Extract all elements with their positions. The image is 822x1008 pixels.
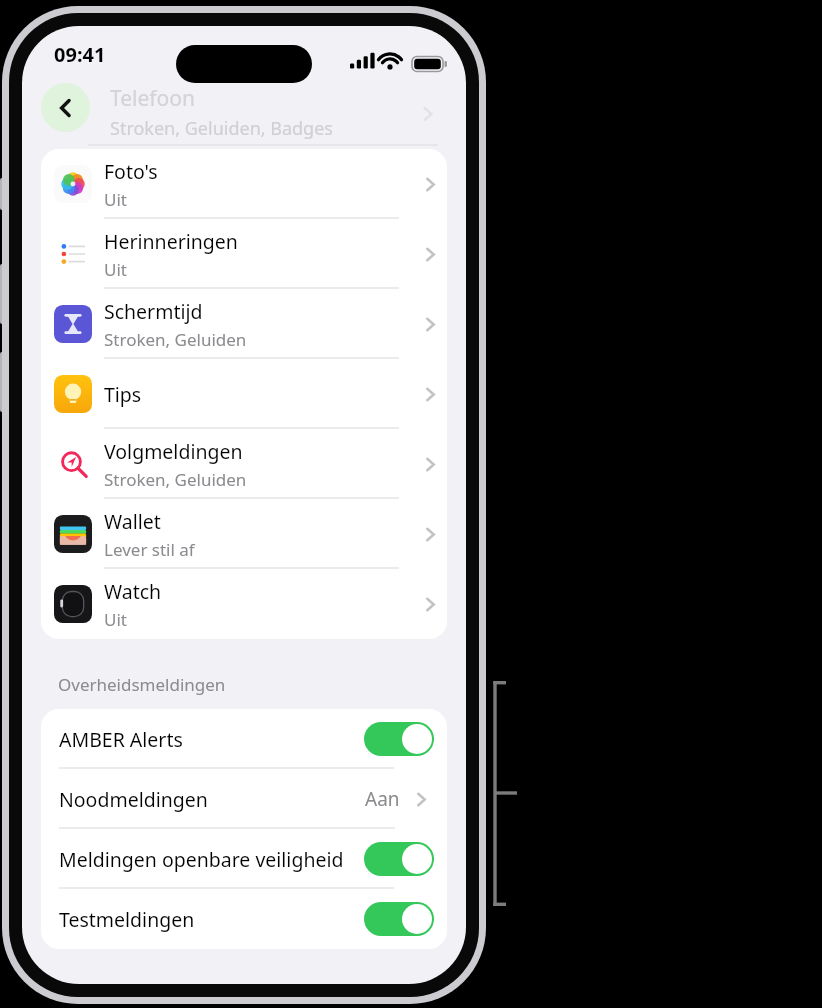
- button[interactable]: Meldingen openbare veiligheid: [41, 829, 447, 889]
- staticText: Lever stil af: [104, 538, 195, 561]
- button[interactable]: AMBER Alerts toggle, on: [364, 722, 434, 756]
- staticText: Aan: [365, 786, 400, 812]
- staticText: Stroken, Geluiden: [104, 328, 247, 351]
- staticText: Stroken, Geluiden: [104, 468, 247, 491]
- button[interactable]: AMBER Alerts: [41, 709, 447, 769]
- button[interactable]: Watch: [41, 569, 447, 639]
- staticText: Noodmeldingen: [59, 786, 208, 813]
- button[interactable]: Noodmeldingen: [41, 769, 447, 829]
- staticText: Meldingen openbare veiligheid: [59, 846, 344, 873]
- button[interactable]: Testmeldingen: [41, 889, 447, 949]
- staticText: Tips: [104, 381, 142, 408]
- button[interactable]: Wallet: [41, 499, 447, 569]
- button[interactable]: Foto's: [41, 149, 447, 219]
- button[interactable]: Volgmeldingen: [41, 429, 447, 499]
- button[interactable]: Testmeldingen toggle, on: [364, 902, 434, 936]
- staticText: Foto's: [104, 158, 158, 185]
- button[interactable]: Meldingen openbare veiligheid toggle, on: [364, 842, 434, 876]
- staticText: Uit: [104, 188, 127, 211]
- staticText: Overheidsmeldingen: [58, 673, 226, 696]
- staticText: Uit: [104, 608, 127, 631]
- staticText: Watch: [104, 578, 162, 605]
- staticText: Stroken, Geluiden, Badges: [110, 116, 333, 141]
- staticText: Herinneringen: [104, 228, 238, 255]
- button[interactable]: Back: [41, 83, 90, 132]
- staticText: Uit: [104, 258, 127, 281]
- button[interactable]: Schermtijd: [41, 289, 447, 359]
- staticText: 09:41: [54, 41, 106, 68]
- staticText: Schermtijd: [104, 298, 203, 325]
- staticText: Wallet: [104, 508, 161, 535]
- staticText: AMBER Alerts: [59, 726, 183, 753]
- button[interactable]: Tips: [41, 359, 447, 429]
- staticText: Telefoon: [110, 84, 195, 113]
- staticText: Volgmeldingen: [104, 438, 243, 465]
- staticText: Testmeldingen: [59, 906, 195, 933]
- button[interactable]: Herinneringen: [41, 219, 447, 289]
